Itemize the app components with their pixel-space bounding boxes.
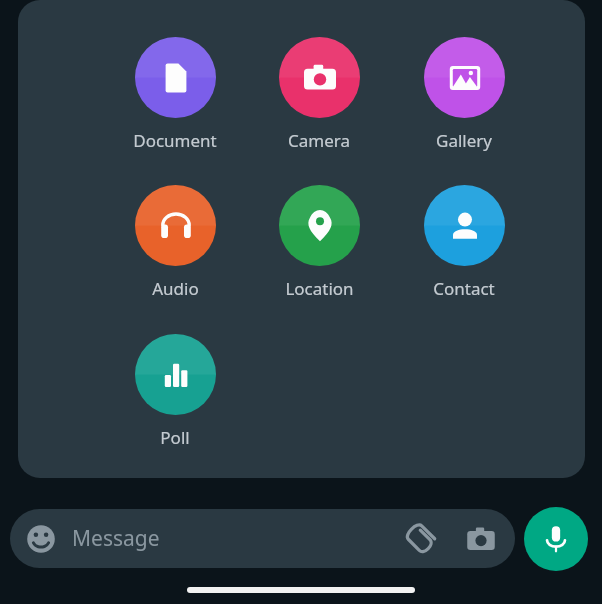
- button[interactable]: Location: [269, 185, 369, 300]
- button[interactable]: Gallery: [414, 37, 514, 152]
- staticText: Gallery: [436, 129, 492, 152]
- button[interactable]: Audio: [125, 185, 225, 300]
- staticText: Camera: [288, 129, 350, 152]
- button[interactable]: Camera: [269, 37, 369, 152]
- button[interactable]: Emoji: [24, 522, 58, 556]
- button[interactable]: Document: [125, 37, 225, 152]
- button[interactable]: Emoji: [10, 509, 515, 568]
- button[interactable]: Poll: [125, 334, 225, 449]
- button[interactable]: Contact: [414, 185, 514, 300]
- button[interactable]: Attach: [401, 519, 441, 559]
- button[interactable]: Voice message: [524, 507, 588, 571]
- staticText: Location: [285, 277, 354, 300]
- staticText: Document: [133, 129, 217, 152]
- staticText: Audio: [152, 277, 199, 300]
- staticText: Poll: [160, 426, 190, 449]
- button[interactable]: Camera: [461, 519, 501, 559]
- staticText: Message: [72, 524, 160, 553]
- staticText: Contact: [433, 277, 495, 300]
